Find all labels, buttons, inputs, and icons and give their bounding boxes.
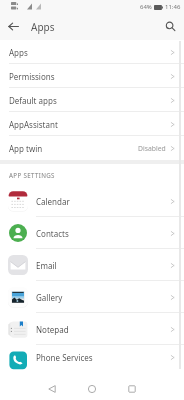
staticText: Disabled <box>138 144 166 153</box>
button[interactable]: Default apps <box>0 88 184 112</box>
button[interactable]: Permissions <box>0 64 184 88</box>
button[interactable]: Apps <box>0 40 184 64</box>
staticText: App twin <box>9 143 43 154</box>
button[interactable]: Contacts <box>0 217 184 249</box>
staticText: Phone Services <box>36 352 93 363</box>
staticText: Default apps <box>9 95 57 106</box>
button[interactable]: Calendar <box>0 185 184 217</box>
staticText: Apps <box>31 20 55 34</box>
button[interactable]: Recents <box>121 378 143 400</box>
staticText: Email <box>36 260 57 271</box>
staticText: Gallery <box>36 292 63 303</box>
button[interactable]: Search <box>157 13 184 40</box>
button[interactable]: Back <box>41 378 63 400</box>
staticText: AppAssistant <box>9 119 58 130</box>
button[interactable]: Email <box>0 249 184 281</box>
staticText: 64% <box>140 3 152 11</box>
staticText: APP SETTINGS <box>9 171 55 179</box>
staticText: Calendar <box>36 196 70 207</box>
button[interactable]: Phone Services <box>0 345 184 370</box>
staticText: Notepad <box>36 324 69 335</box>
staticText: Permissions <box>9 71 55 82</box>
button[interactable]: AppAssistant <box>0 112 184 136</box>
button[interactable]: Notepad <box>0 313 184 345</box>
staticText: Contacts <box>36 228 69 239</box>
staticText: 11:46 <box>165 3 181 11</box>
button[interactable]: Home <box>81 378 103 400</box>
button[interactable]: Back <box>0 13 27 40</box>
staticText: Apps <box>9 47 28 58</box>
button[interactable]: Gallery <box>0 281 184 313</box>
button[interactable]: App twin <box>0 136 184 160</box>
